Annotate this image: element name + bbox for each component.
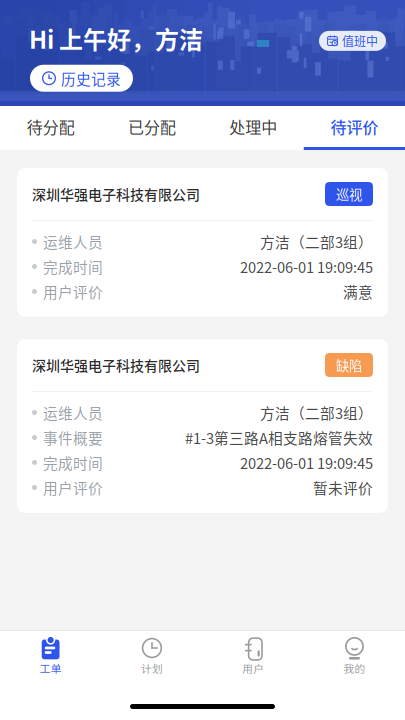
staticText: 方洁（二部3组） [260, 402, 373, 423]
staticText: 完成时间 [43, 256, 103, 277]
staticText: 方洁（二部3组） [260, 231, 373, 252]
staticText: 满意 [343, 281, 373, 302]
button[interactable]: 用户 [202, 631, 304, 680]
button[interactable]: 处理中 [202, 106, 304, 150]
staticText: 巡视 [336, 184, 362, 204]
staticText: 缺陷 [336, 355, 362, 375]
staticText: 工单 [40, 660, 62, 676]
staticText: 已分配 [128, 115, 176, 138]
staticText: 历史记录 [61, 68, 121, 89]
staticText: 用户评价 [43, 477, 103, 498]
staticText: Hi 上午好，方洁 [29, 21, 203, 56]
button[interactable]: 待分配 [0, 106, 101, 150]
button[interactable]: 计划 [101, 631, 202, 680]
button[interactable]: 深圳华强电子科技有限公司 [17, 339, 388, 513]
button[interactable]: 已分配 [101, 106, 202, 150]
staticText: 待评价 [330, 115, 378, 138]
staticText: 运维人员 [43, 402, 103, 423]
staticText: 深圳华强电子科技有限公司 [32, 184, 200, 204]
staticText: 用户评价 [43, 281, 103, 302]
staticText: 事件概要 [43, 427, 103, 448]
button[interactable]: 工单 [0, 631, 101, 680]
button[interactable]: 历史记录 [30, 65, 133, 92]
staticText: 我的 [343, 660, 365, 676]
staticText: 用户 [242, 660, 264, 676]
staticText: 计划 [141, 660, 163, 676]
staticText: 处理中 [229, 115, 277, 138]
button[interactable]: 值班中 [319, 26, 386, 51]
staticText: 2022-06-01 19:09:45 [240, 256, 373, 277]
staticText: 暂未评价 [313, 477, 373, 498]
staticText: 2022-06-01 19:09:45 [240, 452, 373, 473]
staticText: 运维人员 [43, 231, 103, 252]
button[interactable]: 待评价 [304, 106, 405, 150]
staticText: 值班中 [342, 32, 378, 50]
button[interactable]: 我的 [304, 631, 405, 680]
staticText: 完成时间 [43, 452, 103, 473]
staticText: 深圳华强电子科技有限公司 [32, 355, 200, 375]
button[interactable]: 深圳华强电子科技有限公司 [17, 168, 388, 317]
staticText: 待分配 [27, 115, 75, 138]
staticText: #1-3第三路A相支路熔管失效 [185, 427, 373, 448]
